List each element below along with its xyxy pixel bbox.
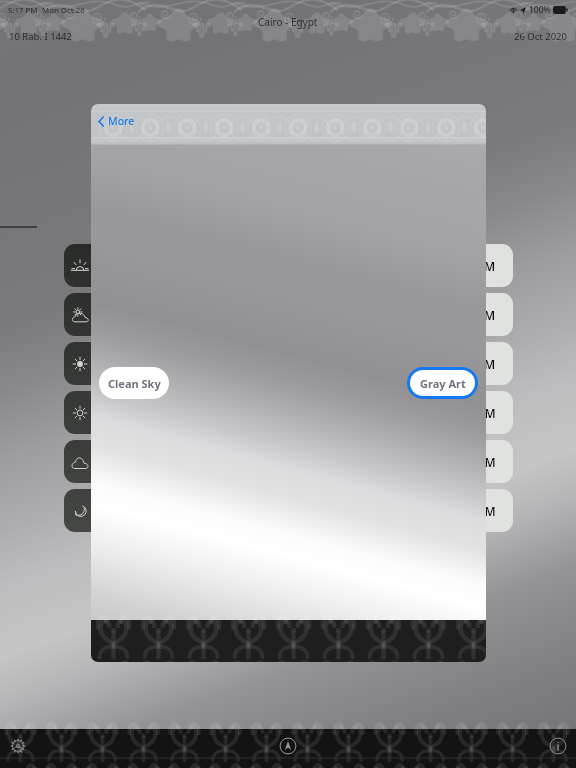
button[interactable]: 5:01 AM (363, 244, 513, 287)
button[interactable] (64, 391, 239, 434)
staticText: Cairo - Egypt (258, 15, 318, 29)
staticText: 100% (529, 4, 551, 16)
button[interactable]: Clean Sky (99, 367, 169, 399)
button[interactable]: 6:26 AM (363, 293, 513, 336)
button[interactable]: Info (543, 731, 573, 761)
button[interactable] (64, 489, 239, 532)
button[interactable] (64, 440, 239, 483)
button[interactable]: More (98, 114, 135, 128)
staticText: 5:17 PM (8, 5, 38, 16)
staticText: Gray Art (420, 376, 466, 391)
button[interactable] (64, 244, 239, 287)
button[interactable]: 11:47 AM (363, 342, 513, 385)
button[interactable]: Settings (3, 731, 33, 761)
staticText: 6:25 PM (450, 503, 496, 519)
staticText: 11:47 AM (442, 356, 496, 372)
staticText: 5:01 AM (449, 258, 496, 274)
staticText: More (108, 114, 135, 128)
staticText: 26 Oct 2020 (514, 30, 567, 43)
staticText: 2:56 PM (450, 405, 496, 421)
button[interactable]: 2:56 PM (363, 391, 513, 434)
button[interactable]: 5:07 PM (363, 440, 513, 483)
staticText: 10 Rab. I 1442 (9, 30, 72, 43)
button[interactable] (64, 342, 239, 385)
button[interactable]: 6:25 PM (363, 489, 513, 532)
button[interactable]: Gray Art (410, 370, 475, 396)
button[interactable] (64, 293, 239, 336)
button[interactable]: Qibla compass (273, 731, 303, 761)
staticText: Clean Sky (108, 376, 161, 391)
staticText: 5:07 PM (450, 454, 496, 470)
staticText: 6:26 AM (449, 307, 496, 323)
staticText: Mon Oct 26 (42, 5, 85, 16)
